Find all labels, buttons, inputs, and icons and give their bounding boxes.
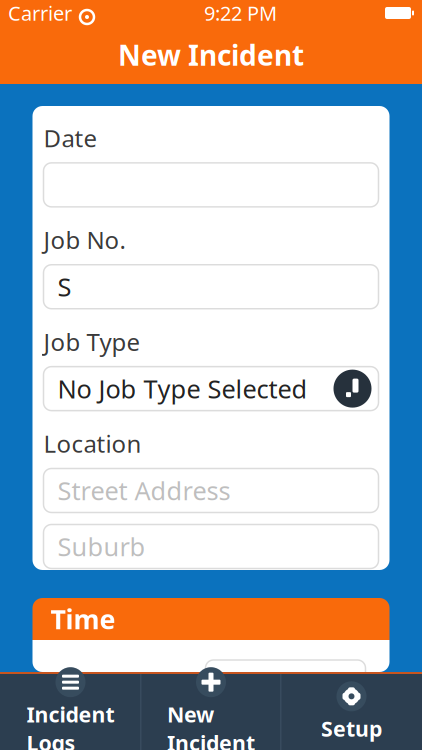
button[interactable]: Setup: [281, 674, 421, 750]
staticText: New Incident: [118, 36, 304, 74]
button[interactable]: S: [43, 265, 378, 309]
staticText: No Job Type Selected: [57, 372, 307, 405]
button[interactable]: Street Address: [43, 468, 378, 512]
staticText: Location: [43, 428, 141, 459]
staticText: New Incident: [167, 700, 255, 750]
staticText: Setup: [321, 714, 382, 743]
staticText: Incident Logs: [26, 700, 114, 750]
staticText: Suburb: [57, 530, 145, 563]
staticText: Street Address: [57, 474, 230, 507]
button[interactable]: New Incident: [141, 674, 280, 750]
staticText: Time: [50, 601, 115, 637]
staticText: Job Type: [43, 326, 140, 358]
button[interactable]: No Job Type Selected: [43, 367, 378, 411]
staticText: Date: [43, 122, 97, 154]
staticText: Job No.: [43, 224, 125, 256]
button[interactable]: Suburb: [43, 524, 378, 568]
button[interactable]: [43, 163, 378, 207]
staticText: Carrier: [8, 0, 72, 26]
button[interactable]: Incident Logs: [0, 674, 140, 750]
staticText: S: [57, 270, 71, 303]
button[interactable]: Edit Job Type: [332, 369, 372, 409]
staticText: 9:22 PM: [204, 0, 277, 26]
